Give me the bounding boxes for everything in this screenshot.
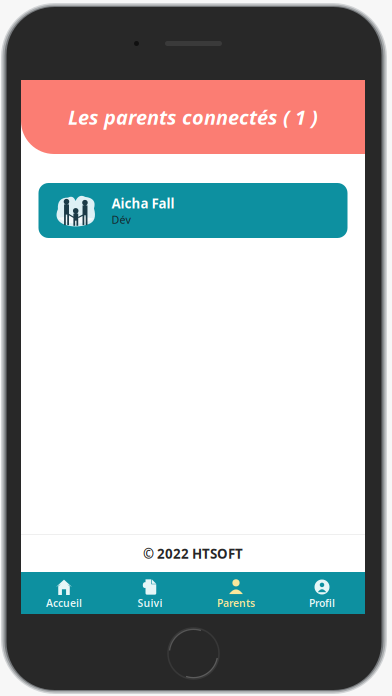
staticText: Suivi	[137, 596, 162, 610]
button[interactable]: Aicha Fall	[38, 183, 347, 238]
staticText: Parents	[217, 596, 255, 610]
staticText: Accueil	[46, 596, 82, 610]
staticText: Les parents connectés ( 1 )	[68, 103, 318, 131]
staticText: Profil	[309, 596, 335, 610]
button[interactable]: Accueil	[21, 572, 107, 614]
staticText: Dév	[111, 212, 130, 227]
button[interactable]: Parents	[193, 572, 279, 614]
button[interactable]: Suivi	[107, 572, 193, 614]
button[interactable]: Profil	[279, 572, 365, 614]
staticText: © 2022 HTSOFT	[143, 544, 243, 563]
staticText: Aicha Fall	[111, 194, 174, 212]
